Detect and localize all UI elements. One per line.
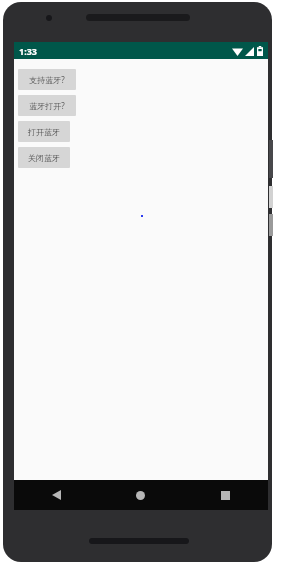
staticText: 关闭蓝牙 [28, 153, 60, 163]
button[interactable]: 打开蓝牙 [18, 121, 70, 142]
staticText: 蓝牙打开? [29, 100, 65, 111]
button[interactable]: Back [14, 480, 98, 510]
button[interactable]: 蓝牙打开? [18, 95, 76, 116]
staticText: 打开蓝牙 [28, 127, 60, 137]
button[interactable]: Recent apps [183, 480, 268, 510]
button[interactable]: 关闭蓝牙 [18, 147, 70, 168]
button[interactable]: 支持蓝牙? [18, 69, 76, 90]
button[interactable]: Home [98, 480, 183, 510]
staticText: 1:33 [19, 45, 37, 57]
staticText: 支持蓝牙? [29, 74, 65, 85]
